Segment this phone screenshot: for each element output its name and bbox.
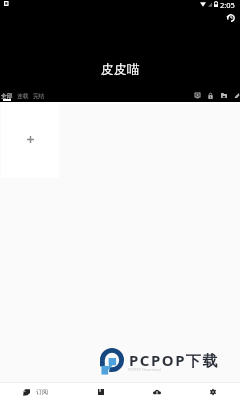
staticText: 全部 <box>1 92 13 99</box>
button[interactable]: Lock <box>204 89 217 102</box>
button[interactable]: Settings <box>200 384 225 400</box>
staticText: PCPOP Download <box>128 367 161 372</box>
button[interactable]: 完结 <box>31 91 47 100</box>
button[interactable]: Display <box>191 89 204 102</box>
button[interactable]: Bookshelf <box>88 384 113 400</box>
staticText: PCPOP下载 <box>129 350 219 370</box>
button[interactable]: 全部 <box>0 91 15 100</box>
button[interactable]: Folder <box>217 89 230 102</box>
button[interactable]: Add <box>1 103 59 178</box>
button[interactable]: History <box>224 11 238 25</box>
staticText: 完结 <box>33 92 45 99</box>
button[interactable]: Cloud upload <box>144 384 169 400</box>
staticText: 2:05 <box>220 0 235 10</box>
staticText: 订阅 <box>36 388 48 396</box>
button[interactable]: Edit <box>230 89 240 102</box>
button[interactable]: 订阅 <box>14 384 56 400</box>
staticText: 皮皮喵 <box>101 61 140 77</box>
button[interactable]: 连载 <box>15 91 31 100</box>
staticText: 连载 <box>17 92 29 99</box>
